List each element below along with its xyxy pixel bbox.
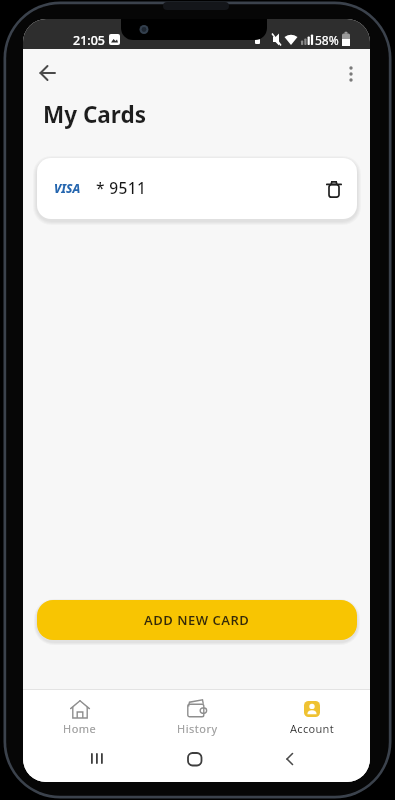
staticText: My Cards [43, 99, 146, 130]
button[interactable] [321, 176, 347, 202]
staticText: 21:05 [73, 32, 106, 49]
staticText: History [177, 721, 218, 736]
staticText: VISA [54, 180, 81, 196]
button[interactable]: Home [50, 692, 110, 738]
button[interactable]: VISA [37, 158, 357, 219]
staticText: Account [290, 721, 334, 736]
staticText: Home [63, 721, 97, 736]
button[interactable]: History [167, 692, 227, 738]
staticText: * 9511 [96, 177, 147, 198]
staticText: ADD NEW CARD [144, 611, 250, 629]
button[interactable] [35, 60, 60, 85]
button[interactable] [340, 62, 362, 86]
staticText: 58% [315, 32, 339, 48]
button[interactable]: Account [282, 692, 342, 738]
button[interactable]: ADD NEW CARD [37, 600, 357, 640]
